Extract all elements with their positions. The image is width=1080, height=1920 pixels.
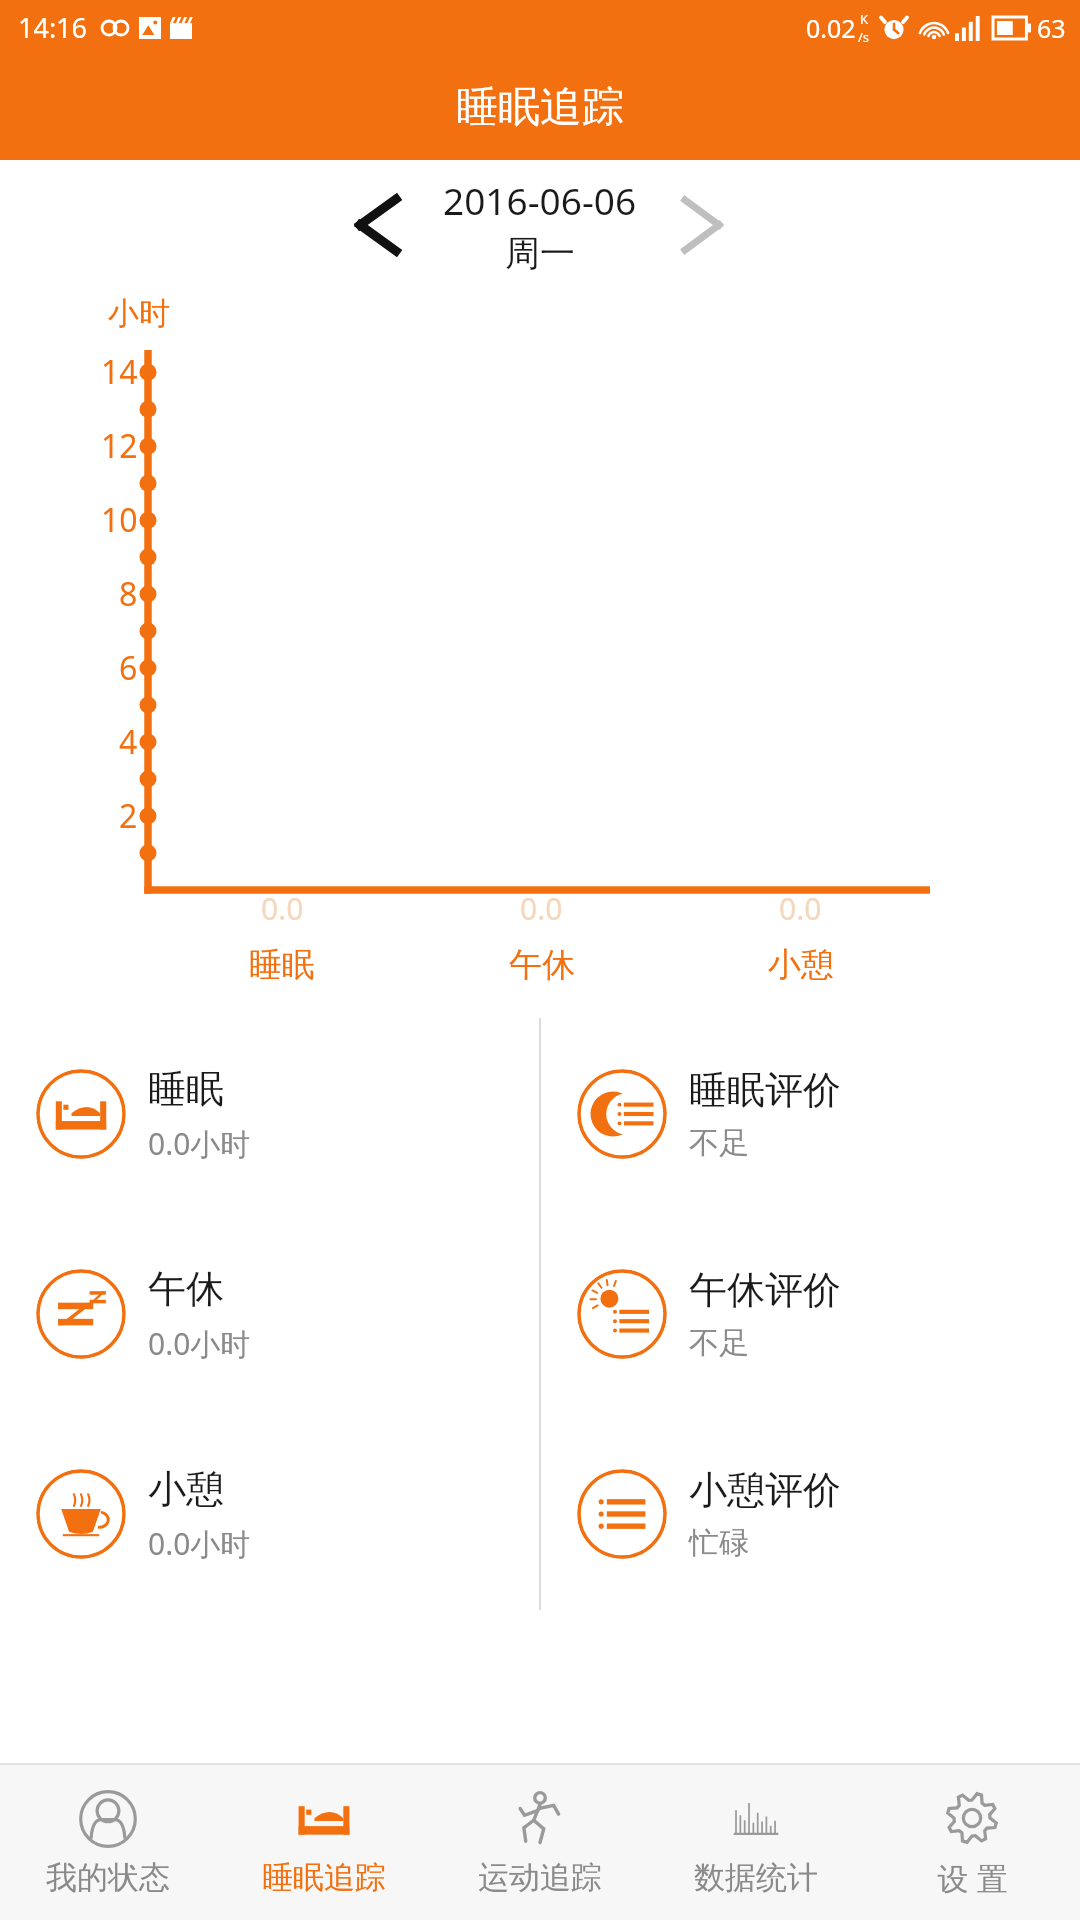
staticText: 8 bbox=[119, 572, 138, 616]
staticText: 0.0 bbox=[520, 888, 563, 929]
button[interactable]: Previous day bbox=[343, 190, 413, 260]
staticText: 14 bbox=[101, 350, 138, 394]
button[interactable]: 运动追踪 bbox=[432, 1765, 648, 1920]
staticText: 4 bbox=[119, 720, 138, 764]
staticText: 周一 bbox=[505, 231, 575, 275]
button[interactable]: Next day bbox=[667, 190, 737, 260]
staticText: 午休 bbox=[509, 944, 575, 986]
staticText: 睡眠 bbox=[249, 944, 315, 986]
staticText: 睡眠 bbox=[148, 1065, 224, 1113]
staticText: 午休评价 bbox=[689, 1266, 841, 1314]
staticText: 0.0 bbox=[779, 888, 822, 929]
staticText: 14:16 bbox=[18, 9, 88, 46]
staticText: 2016-06-06 bbox=[443, 175, 637, 225]
staticText: 数据统计 bbox=[694, 1858, 818, 1897]
staticText: 6 bbox=[119, 646, 138, 690]
staticText: 睡眠追踪 bbox=[262, 1858, 386, 1897]
staticText: 0.02 bbox=[806, 11, 856, 45]
button[interactable]: 我的状态 bbox=[0, 1765, 216, 1920]
staticText: 不足 bbox=[689, 1124, 749, 1162]
staticText: 2 bbox=[119, 794, 138, 838]
staticText: 0.0 bbox=[261, 888, 304, 929]
button[interactable]: 设 置 bbox=[864, 1765, 1080, 1920]
staticText: 睡眠评价 bbox=[689, 1066, 841, 1114]
staticText: 小憩评价 bbox=[689, 1466, 841, 1514]
staticText: 0.0小时 bbox=[148, 1523, 251, 1564]
button[interactable]: 睡眠 bbox=[0, 1014, 539, 1214]
button[interactable]: 数据统计 bbox=[648, 1765, 864, 1920]
staticText: 63 bbox=[1037, 11, 1066, 45]
staticText: K bbox=[860, 10, 869, 28]
staticText: 小憩 bbox=[148, 1465, 224, 1513]
staticText: 运动追踪 bbox=[478, 1858, 602, 1897]
button[interactable]: 睡眠评价 bbox=[541, 1014, 1080, 1214]
staticText: 睡眠追踪 bbox=[456, 81, 624, 134]
staticText: 我的状态 bbox=[46, 1858, 170, 1897]
button[interactable]: 午休评价 bbox=[541, 1214, 1080, 1414]
staticText: 不足 bbox=[689, 1324, 749, 1362]
staticText: 小时 bbox=[108, 294, 170, 333]
staticText: 10 bbox=[101, 498, 138, 542]
staticText: 小憩 bbox=[768, 944, 834, 986]
staticText: 12 bbox=[101, 424, 138, 468]
staticText: 0.0小时 bbox=[148, 1323, 251, 1364]
staticText: 设 置 bbox=[937, 1857, 1008, 1899]
button[interactable]: 睡眠追踪 bbox=[216, 1765, 432, 1920]
staticText: 午休 bbox=[148, 1265, 224, 1313]
button[interactable]: 小憩 bbox=[0, 1414, 539, 1614]
staticText: /s bbox=[858, 28, 870, 46]
staticText: 0.0小时 bbox=[148, 1123, 251, 1164]
button[interactable]: 小憩评价 bbox=[541, 1414, 1080, 1614]
staticText: 忙碌 bbox=[689, 1524, 749, 1562]
button[interactable]: 午休 bbox=[0, 1214, 539, 1414]
